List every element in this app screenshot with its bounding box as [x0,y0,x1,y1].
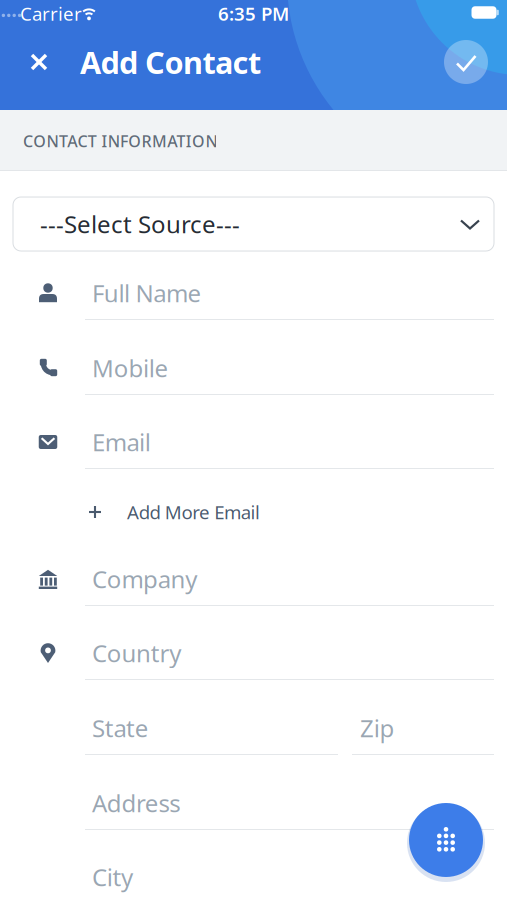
staticText: Carrier [20,1,82,26]
button[interactable]: Mobile [0,343,507,418]
staticText: Email [92,426,151,458]
staticText: City [92,861,133,893]
staticText: CONTACT INFORMATION [23,130,217,152]
button[interactable]: Close [24,47,54,77]
button[interactable]: Company [0,554,507,629]
button[interactable]: Full Name [0,268,507,343]
staticText: Mobile [92,352,168,384]
staticText: State [92,712,149,744]
staticText: Company [92,563,197,595]
staticText: Add Contact [80,42,261,82]
staticText: Full Name [92,277,202,309]
staticText: Zip [360,712,394,744]
button[interactable]: Email [0,417,507,492]
staticText: Add More Email [127,500,260,524]
staticText: ---Select Source--- [40,208,240,240]
button[interactable]: State [0,703,507,778]
button[interactable]: ---Select Source--- [13,197,494,251]
staticText: 6:35 PM [218,1,289,26]
button[interactable]: City [0,854,507,900]
button[interactable]: Address [0,778,507,853]
button[interactable]: Country [0,628,507,703]
button[interactable]: Dial pad [409,803,483,877]
staticText: Country [92,637,181,669]
button[interactable]: Save [444,40,488,84]
button[interactable]: Add More Email [0,492,507,532]
staticText: Address [92,787,180,819]
